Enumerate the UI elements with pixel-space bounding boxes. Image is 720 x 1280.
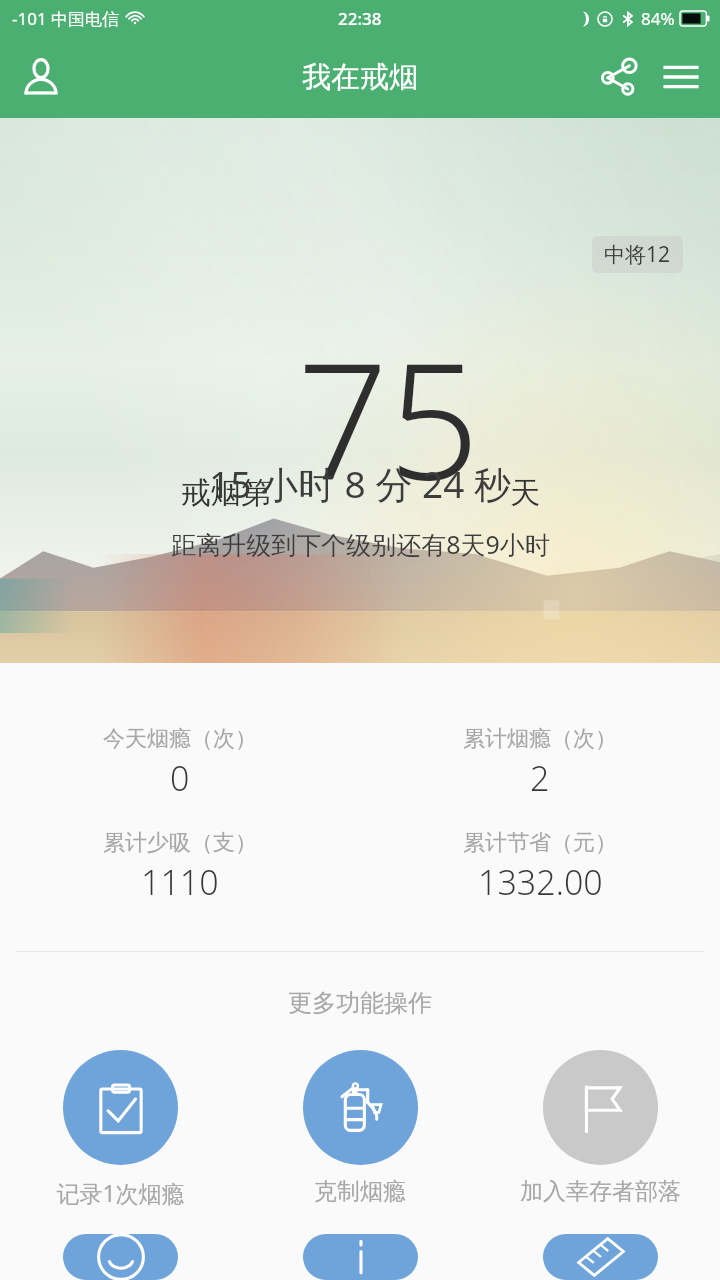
other: Action: [543, 1234, 658, 1280]
button[interactable]: 累计少吸（支）: [0, 829, 360, 905]
button[interactable]: Action: [480, 1234, 720, 1280]
button[interactable]: Share: [590, 48, 648, 106]
button[interactable]: 累计烟瘾（次）: [360, 725, 720, 801]
staticText: 累计少吸（支）: [103, 829, 257, 857]
staticText: 84%: [641, 7, 675, 30]
staticText: 加入幸存者部落: [520, 1177, 681, 1206]
button[interactable]: 加入幸存者部落: [480, 1050, 720, 1206]
button[interactable]: Profile: [14, 50, 68, 104]
staticText: 0: [170, 755, 190, 801]
staticText: 戒烟第: [181, 474, 271, 512]
button[interactable]: 克制烟瘾: [240, 1050, 480, 1206]
staticText: 克制烟瘾: [314, 1177, 406, 1206]
staticText: 我在戒烟: [302, 59, 418, 96]
staticText: 累计节省（元）: [463, 829, 617, 857]
button[interactable]: Action: [0, 1234, 240, 1280]
staticText: 75: [297, 308, 480, 526]
button[interactable]: Action: [240, 1234, 480, 1280]
staticText: 15 小时 8 分 24 秒: [209, 458, 511, 509]
button[interactable]: Menu: [652, 48, 710, 106]
button[interactable]: 今天烟瘾（次）: [0, 725, 360, 801]
staticText: -101 中国电信: [12, 7, 120, 30]
staticText: 更多功能操作: [288, 988, 432, 1018]
other: 记录1次烟瘾: [63, 1050, 178, 1165]
other: 克制烟瘾: [303, 1050, 418, 1165]
staticText: 1332.00: [478, 859, 603, 905]
staticText: 距离升级到下个级别还有8天9小时: [171, 527, 550, 561]
staticText: 2: [530, 755, 550, 801]
button[interactable]: 累计节省（元）: [360, 829, 720, 905]
button[interactable]: 记录1次烟瘾: [0, 1050, 240, 1208]
staticText: 天: [510, 474, 540, 512]
other: Action: [63, 1234, 178, 1280]
staticText: 中将12: [604, 240, 671, 269]
staticText: 1110: [141, 859, 219, 905]
staticText: 记录1次烟瘾: [56, 1177, 185, 1208]
staticText: 22:38: [338, 7, 382, 30]
other: Action: [303, 1234, 418, 1280]
button[interactable]: 中将12: [592, 236, 683, 273]
staticText: 今天烟瘾（次）: [103, 725, 257, 753]
other: 加入幸存者部落: [543, 1050, 658, 1165]
staticText: 累计烟瘾（次）: [463, 725, 617, 753]
